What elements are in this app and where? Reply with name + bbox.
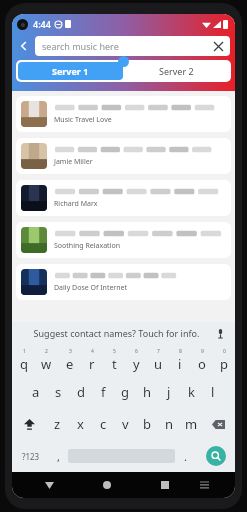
staticText: Suggest contact names? Touch for info. xyxy=(20,327,213,339)
button[interactable]: Server 1 xyxy=(18,62,123,80)
staticText: q xyxy=(20,355,28,373)
staticText: Richard Marx xyxy=(54,199,98,209)
button[interactable]: , xyxy=(49,440,68,472)
staticText: Soothing Relaxation xyxy=(54,241,120,251)
staticText: y xyxy=(133,355,140,373)
button[interactable]: Daily Dose Of Internet xyxy=(16,264,231,300)
button[interactable]: g xyxy=(114,376,136,408)
staticText: 1 xyxy=(23,348,26,355)
button[interactable]: m xyxy=(180,408,202,440)
staticText: 6 xyxy=(135,348,138,355)
staticText: b xyxy=(143,415,151,433)
button[interactable]: h xyxy=(136,376,158,408)
button[interactable]: search music here xyxy=(35,36,230,56)
staticText: 5 xyxy=(113,348,116,355)
staticText: t xyxy=(112,355,117,373)
button[interactable]: 8 xyxy=(169,344,191,376)
button[interactable]: c xyxy=(92,408,114,440)
staticText: p xyxy=(220,355,228,373)
staticText: x xyxy=(77,415,84,433)
staticText: 8 xyxy=(179,348,182,355)
button[interactable]: Server 2 xyxy=(123,62,229,80)
staticText: Music Travel Love xyxy=(54,115,112,125)
button[interactable]: 1 xyxy=(12,344,35,376)
staticText: j xyxy=(167,383,171,401)
button[interactable]: 2 xyxy=(35,344,58,376)
staticText: k xyxy=(188,383,195,401)
button[interactable]: s xyxy=(47,376,70,408)
button[interactable]: Soothing Relaxation xyxy=(16,222,231,258)
button[interactable]: Shift xyxy=(12,408,46,440)
staticText: l xyxy=(211,383,215,401)
staticText: r xyxy=(89,355,95,373)
button[interactable]: Voice input xyxy=(213,326,227,340)
staticText: ?123 xyxy=(22,451,40,462)
button[interactable]: ?123 xyxy=(12,440,49,472)
staticText: z xyxy=(54,415,61,433)
button[interactable]: Search xyxy=(206,446,226,466)
staticText: Jamie Miller xyxy=(54,157,93,167)
staticText: u xyxy=(154,355,163,373)
button[interactable]: a xyxy=(24,376,47,408)
staticText: n xyxy=(165,415,174,433)
button[interactable]: Recents xyxy=(154,474,176,496)
button[interactable]: 7 xyxy=(147,344,169,376)
button[interactable]: f xyxy=(92,376,114,408)
button[interactable]: 9 xyxy=(191,344,213,376)
button[interactable]: Jamie Miller xyxy=(16,138,231,174)
staticText: c xyxy=(100,415,107,433)
staticText: v xyxy=(122,415,129,433)
staticText: Server 2 xyxy=(159,65,194,77)
button[interactable]: Back xyxy=(15,37,33,55)
staticText: i xyxy=(178,355,182,373)
button[interactable]: Clear xyxy=(214,42,223,51)
staticText: o xyxy=(198,355,206,373)
button[interactable]: 6 xyxy=(125,344,147,376)
button[interactable]: z xyxy=(46,408,69,440)
button[interactable]: 4 xyxy=(81,344,103,376)
staticText: e xyxy=(66,355,74,373)
staticText: 3 xyxy=(69,348,72,355)
button[interactable]: Music Travel Love xyxy=(16,96,231,132)
button[interactable]: Menu xyxy=(194,475,214,495)
staticText: m xyxy=(185,415,198,433)
staticText: . xyxy=(184,449,187,464)
button[interactable]: 5 xyxy=(103,344,125,376)
button[interactable]: Richard Marx xyxy=(16,180,231,216)
button[interactable]: n xyxy=(158,408,180,440)
staticText: f xyxy=(101,383,106,401)
staticText: , xyxy=(57,449,60,464)
button[interactable]: l xyxy=(202,376,224,408)
staticText: 4:44 xyxy=(33,18,51,30)
staticText: 9 xyxy=(201,348,204,355)
button[interactable]: k xyxy=(180,376,202,408)
button[interactable]: b xyxy=(136,408,158,440)
staticText: 7 xyxy=(157,348,160,355)
staticText: Daily Dose Of Internet xyxy=(54,283,128,293)
staticText: w xyxy=(41,355,52,373)
staticText: d xyxy=(77,383,85,401)
staticText: Server 1 xyxy=(52,65,89,77)
staticText: 0 xyxy=(223,348,226,355)
button[interactable]: 3 xyxy=(58,344,81,376)
button[interactable]: j xyxy=(158,376,180,408)
button[interactable]: d xyxy=(70,376,92,408)
staticText: s xyxy=(55,383,62,401)
button[interactable]: 0 xyxy=(213,344,235,376)
staticText: h xyxy=(143,383,152,401)
button[interactable]: . xyxy=(175,440,196,472)
button[interactable]: Home xyxy=(96,474,118,496)
button[interactable]: Back xyxy=(38,474,60,496)
button[interactable]: v xyxy=(114,408,136,440)
button[interactable]: x xyxy=(69,408,92,440)
staticText: a xyxy=(32,383,40,401)
staticText: 2 xyxy=(45,348,48,355)
staticText: 4 xyxy=(91,348,94,355)
staticText: search music here xyxy=(42,40,214,52)
staticText: g xyxy=(121,383,129,401)
button[interactable]: Backspace xyxy=(202,408,235,440)
